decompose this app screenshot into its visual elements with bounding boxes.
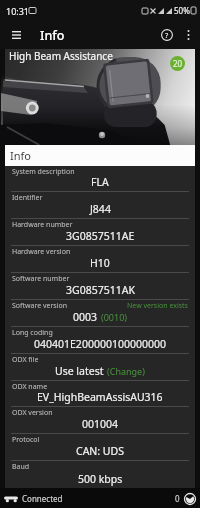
staticText: 10:31 xyxy=(6,5,30,17)
staticText: H10 xyxy=(90,256,110,270)
staticText: Info xyxy=(40,27,65,44)
button[interactable]: Hardware version xyxy=(5,246,195,272)
button[interactable]: Battery status xyxy=(183,492,196,505)
staticText: EV_HighBeamAssisAU316 xyxy=(37,390,163,404)
staticText: (0010) xyxy=(101,311,127,323)
staticText: ODX file xyxy=(12,355,39,365)
staticText: 20 xyxy=(173,58,183,69)
button[interactable]: ODX version xyxy=(5,407,195,433)
button[interactable]: Protocol xyxy=(5,434,195,460)
staticText: Software version xyxy=(12,301,68,311)
staticText: Long coding xyxy=(12,328,53,338)
button[interactable]: ODX name xyxy=(5,381,195,406)
staticText: New version exists xyxy=(127,301,188,311)
button[interactable]: ODX file xyxy=(5,354,195,380)
staticText: CAN: UDS xyxy=(76,444,124,458)
button[interactable]: Identifier xyxy=(5,192,195,218)
staticText: ? xyxy=(165,30,169,40)
staticText: FLA xyxy=(91,175,109,189)
staticText: 50% xyxy=(174,5,190,16)
staticText: Hardware number xyxy=(12,220,73,230)
staticText: ODX version xyxy=(12,408,53,418)
button[interactable]: System description xyxy=(5,166,195,191)
staticText: System description xyxy=(12,167,75,177)
button[interactable]: Long coding xyxy=(5,327,195,353)
staticText: Identifier xyxy=(12,193,43,203)
staticText: 3G0857511AK xyxy=(66,283,135,297)
button[interactable]: Hardware number xyxy=(5,219,195,245)
staticText: Connected xyxy=(22,493,63,504)
button[interactable]: Connected xyxy=(4,493,63,504)
staticText: Info xyxy=(10,148,31,163)
staticText: Use latest xyxy=(55,364,104,378)
staticText: Baud xyxy=(12,462,30,472)
button[interactable]: Menu xyxy=(5,24,27,46)
staticText: 001004 xyxy=(82,417,119,431)
staticText: 0 xyxy=(175,493,180,504)
staticText: J844 xyxy=(90,202,111,216)
staticText: (Change) xyxy=(107,365,145,377)
button[interactable]: Software number xyxy=(5,273,195,299)
button[interactable]: Info xyxy=(5,145,195,166)
staticText: Software number xyxy=(12,274,70,284)
staticText: Hardware version xyxy=(12,247,71,257)
button[interactable]: Software version xyxy=(5,300,195,326)
staticText: ODX name xyxy=(12,382,48,392)
staticText: 040401E200000100000000 xyxy=(34,337,166,351)
staticText: 500 kbps xyxy=(78,472,123,486)
button[interactable]: Baud xyxy=(5,461,195,488)
staticText: 0003 xyxy=(73,310,98,324)
staticText: Protocol xyxy=(12,435,40,445)
button[interactable]: Help xyxy=(156,24,178,46)
staticText: High Beam Assistance xyxy=(9,49,113,63)
button[interactable]: More options xyxy=(178,25,198,45)
staticText: 3G0857511AE xyxy=(66,229,135,243)
